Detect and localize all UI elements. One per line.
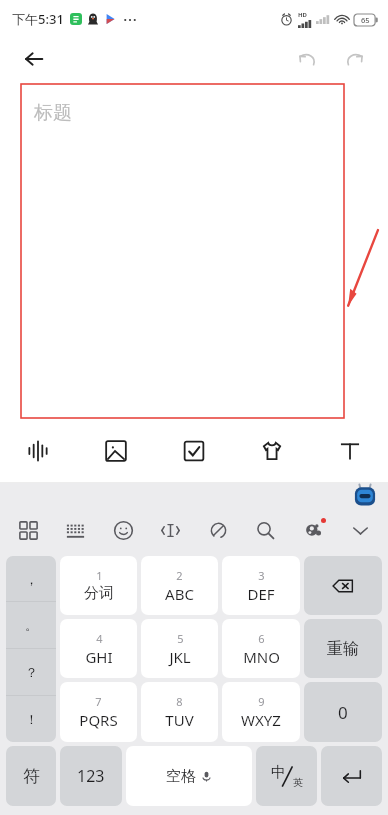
button[interactable]: 3 bbox=[222, 556, 300, 615]
staticText: 重输 bbox=[327, 639, 359, 659]
button[interactable]: 9 bbox=[222, 682, 300, 742]
staticText: 7 bbox=[95, 694, 102, 709]
button[interactable]: ！ bbox=[6, 696, 56, 742]
staticText: 8 bbox=[176, 694, 183, 709]
staticText: 下午5:31 bbox=[12, 10, 64, 28]
button[interactable]: ？ bbox=[6, 649, 56, 695]
button[interactable]: Keyboard layout bbox=[57, 512, 93, 548]
staticText: 123 bbox=[77, 765, 105, 787]
button[interactable]: Voice bbox=[14, 427, 62, 475]
button[interactable]: Settings bbox=[295, 512, 331, 548]
staticText: GHI bbox=[85, 647, 113, 667]
button[interactable]: Cursor bbox=[152, 512, 188, 548]
button[interactable]: 符 bbox=[6, 746, 56, 806]
staticText: 符 bbox=[23, 766, 40, 787]
button[interactable]: ， bbox=[6, 556, 56, 601]
button[interactable]: 1 bbox=[60, 556, 137, 615]
staticText: 中 bbox=[271, 763, 286, 782]
staticText: ！ bbox=[25, 711, 38, 727]
staticText: DEF bbox=[247, 584, 275, 604]
button[interactable]: 4 bbox=[60, 619, 137, 678]
staticText: TUV bbox=[165, 710, 194, 730]
staticText: 5 bbox=[177, 631, 184, 646]
button[interactable]: 6 bbox=[222, 619, 300, 678]
staticText: ？ bbox=[25, 664, 38, 680]
staticText: ， bbox=[25, 571, 38, 587]
button[interactable]: Backspace bbox=[304, 556, 382, 615]
staticText: 9 bbox=[258, 694, 265, 709]
staticText: 2 bbox=[176, 568, 183, 583]
button[interactable]: 。 bbox=[6, 602, 56, 648]
button[interactable]: Enter bbox=[321, 746, 382, 806]
button[interactable]: 8 bbox=[141, 682, 218, 742]
button[interactable]: Search bbox=[247, 512, 283, 548]
button[interactable]: Chinese English toggle bbox=[256, 746, 317, 806]
button[interactable]: Back bbox=[14, 39, 54, 79]
staticText: 0 bbox=[338, 701, 348, 724]
button[interactable]: 5 bbox=[141, 619, 218, 678]
staticText: 分词 bbox=[84, 584, 114, 603]
staticText: 空格 bbox=[166, 767, 196, 786]
button[interactable]: Image bbox=[92, 427, 140, 475]
button[interactable]: Redo bbox=[336, 40, 374, 78]
staticText: MNO bbox=[243, 647, 280, 667]
staticText: 3 bbox=[258, 568, 265, 583]
staticText: JKL bbox=[169, 647, 191, 667]
staticText: 。 bbox=[25, 617, 38, 633]
button[interactable]: Template bbox=[248, 427, 296, 475]
staticText: PQRS bbox=[79, 710, 118, 730]
staticText: 标题 bbox=[34, 101, 72, 125]
staticText: HD bbox=[298, 11, 307, 19]
button[interactable]: Apps bbox=[10, 512, 46, 548]
staticText: 65 bbox=[361, 15, 370, 25]
button[interactable]: Checklist bbox=[170, 427, 218, 475]
staticText: 4 bbox=[96, 631, 103, 646]
button[interactable]: 2 bbox=[141, 556, 218, 615]
button[interactable]: Assistant bbox=[350, 484, 380, 508]
button[interactable]: Hide keyboard bbox=[342, 512, 378, 548]
staticText: 1 bbox=[96, 568, 103, 583]
button[interactable]: 重输 bbox=[304, 619, 382, 678]
staticText: ABC bbox=[165, 584, 194, 604]
button[interactable]: 7 bbox=[60, 682, 137, 742]
staticText: WXYZ bbox=[241, 710, 281, 730]
button[interactable]: Clipboard bbox=[200, 512, 236, 548]
staticText: 英 bbox=[293, 776, 303, 789]
staticText: 6 bbox=[258, 631, 265, 646]
button[interactable]: Text style bbox=[326, 427, 374, 475]
button[interactable]: Emoji bbox=[105, 512, 141, 548]
button[interactable]: 0 bbox=[304, 682, 382, 742]
button[interactable]: 123 bbox=[60, 746, 122, 806]
button[interactable]: Undo bbox=[288, 40, 326, 78]
button[interactable]: 空格 bbox=[126, 746, 252, 806]
